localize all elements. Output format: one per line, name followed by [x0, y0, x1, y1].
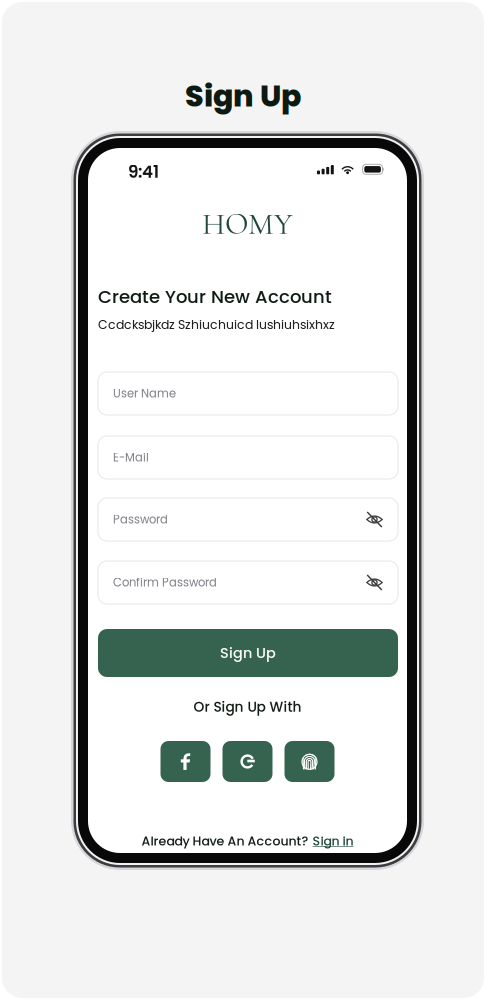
button[interactable]: Already Have An Account?: [88, 832, 407, 850]
staticText: Sign Up: [185, 75, 301, 117]
staticText: User Name: [113, 385, 176, 402]
button[interactable]: Sign up with Google: [222, 741, 272, 782]
staticText: 9:41: [128, 160, 159, 184]
staticText: Already Have An Account?: [141, 832, 308, 850]
button[interactable]: Confirm Password: [98, 561, 398, 604]
staticText: Confirm Password: [113, 574, 217, 591]
staticText: Sign Up: [220, 643, 276, 663]
staticText: Or Sign Up With: [193, 697, 301, 717]
staticText: HOMY: [202, 205, 293, 242]
staticText: Password: [113, 511, 168, 528]
staticText: Create Your New Account: [98, 284, 332, 309]
button[interactable]: Sign up with Facebook: [160, 741, 210, 782]
staticText: Sign in: [312, 832, 353, 850]
button[interactable]: Password: [98, 498, 398, 541]
button[interactable]: Sign up with fingerprint: [284, 741, 334, 782]
button[interactable]: E-Mail: [98, 436, 398, 479]
button[interactable]: User Name: [98, 372, 398, 415]
staticText: Ccdcksbjkdz Szhiuchuicd lushiuhsixhxz: [98, 316, 335, 333]
button[interactable]: Sign Up: [98, 629, 398, 677]
staticText: E-Mail: [113, 449, 149, 466]
